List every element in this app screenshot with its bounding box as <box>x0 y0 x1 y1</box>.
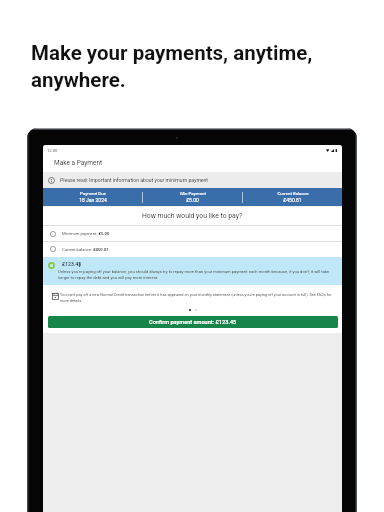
staticText: Confirm payment amount: £123.45 <box>149 319 237 326</box>
staticText: 18 Jan 2024 <box>79 197 107 203</box>
staticText: £5.00 <box>186 197 199 203</box>
staticText: How much would you like to pay? <box>142 212 243 220</box>
button[interactable]: Min Payment <box>143 191 242 203</box>
staticText: Current Balance <box>277 191 309 196</box>
other: Status icons <box>326 149 339 152</box>
staticText: 12:00 <box>47 148 58 153</box>
staticText: Make a Payment <box>54 159 103 167</box>
staticText: Current balance: £450.81 <box>62 247 109 252</box>
button[interactable]: Please read: Important information about… <box>43 172 342 188</box>
staticText: £450.81 <box>283 197 302 203</box>
staticText: Min Payment <box>180 191 206 196</box>
staticText: You can't pay off a new Normal Credit tr… <box>60 292 341 303</box>
staticText: Minimum payment: £5.00 <box>62 231 110 236</box>
staticText: £123.45 <box>62 261 82 267</box>
button[interactable]: Confirm payment amount: £123.45 <box>48 316 338 328</box>
staticText: Make your payments, anytime, anywhere. <box>31 41 331 92</box>
button[interactable] <box>43 257 342 285</box>
staticText: Payment Due <box>80 191 106 196</box>
button[interactable]: Current Balance <box>243 191 342 203</box>
staticText: Unless you're paying off your balance, y… <box>58 269 331 280</box>
button[interactable]: Payment Due <box>43 191 142 203</box>
button[interactable]: Minimum payment: £5.00 <box>43 226 342 241</box>
button[interactable]: Current balance: £450.81 <box>43 241 342 257</box>
staticText: Please read: Important information about… <box>60 177 209 183</box>
